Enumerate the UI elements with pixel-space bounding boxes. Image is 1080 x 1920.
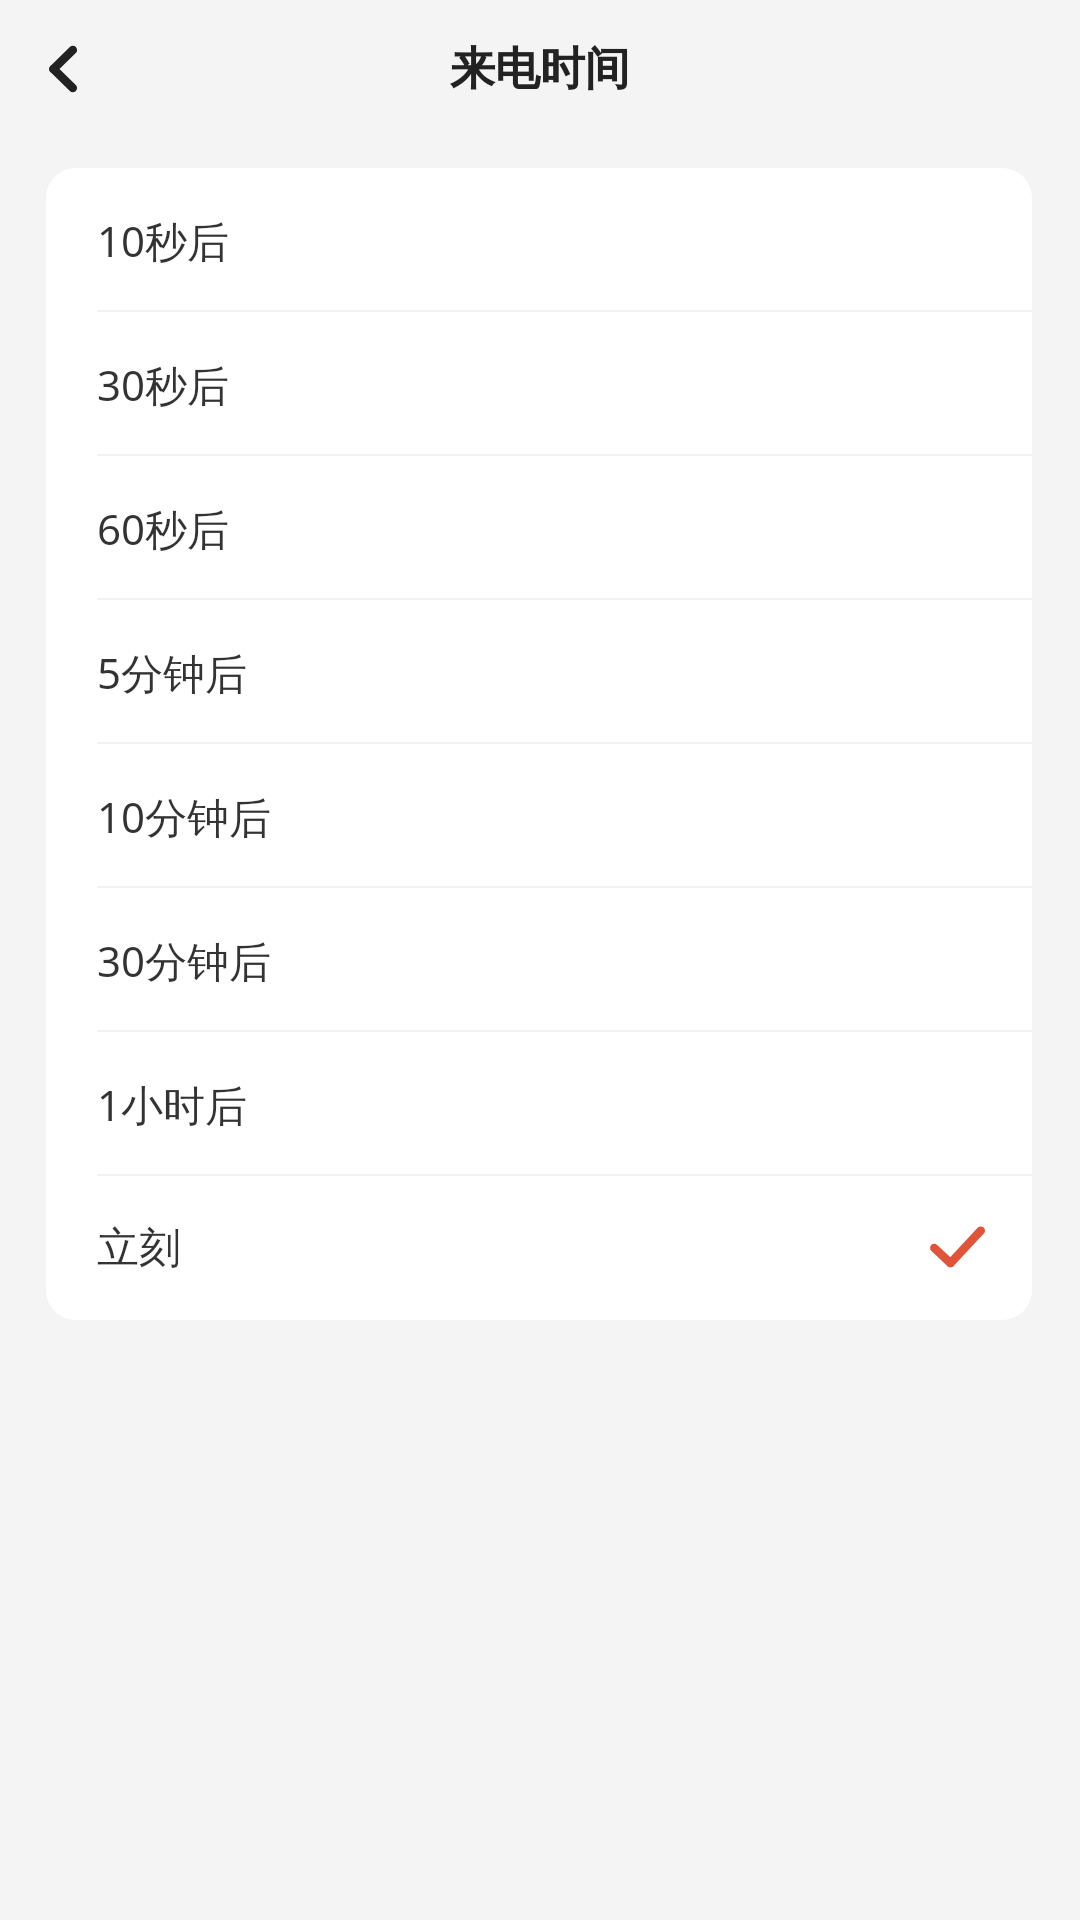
staticText: 1小时后 [97,1076,248,1133]
staticText: 30秒后 [97,356,230,413]
staticText: 10分钟后 [97,788,272,845]
button[interactable]: 60秒后 [46,456,1032,600]
button[interactable]: 10分钟后 [46,744,1032,888]
staticText: 立刻 [97,1222,181,1275]
button[interactable]: 返回 [18,23,110,115]
button[interactable]: 30分钟后 [46,888,1032,1032]
button[interactable]: 5分钟后 [46,600,1032,744]
button[interactable]: 1小时后 [46,1032,1032,1176]
button[interactable]: 10秒后 [46,168,1032,312]
button[interactable]: 立刻 [46,1176,1032,1320]
staticText: 60秒后 [97,500,230,557]
staticText: 10秒后 [97,212,230,269]
button[interactable]: 30秒后 [46,312,1032,456]
staticText: 5分钟后 [97,644,248,701]
staticText: 来电时间 [450,41,630,98]
staticText: 30分钟后 [97,932,272,989]
